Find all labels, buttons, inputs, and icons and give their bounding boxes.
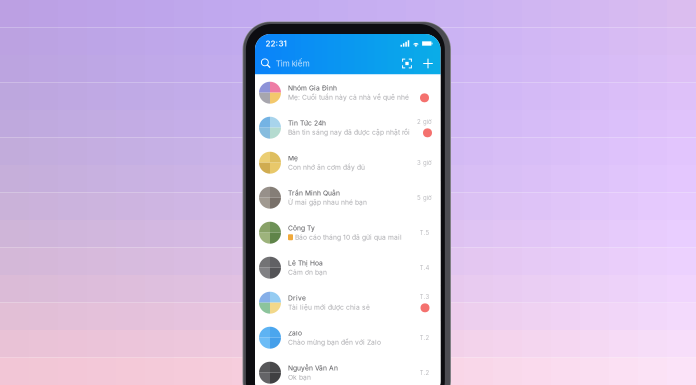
- button[interactable]: Quét mã QR: [398, 53, 416, 74]
- staticText: 2 giờ: [417, 118, 432, 125]
- button[interactable]: Tin Tức 24h: [255, 110, 440, 145]
- staticText: 3 giờ: [417, 159, 432, 166]
- staticText: Chào mừng bạn đến với Zalo: [288, 338, 381, 346]
- button[interactable]: Mẹ: [255, 145, 440, 180]
- staticText: Ok bạn: [288, 373, 311, 381]
- staticText: T.3: [419, 293, 429, 300]
- staticText: Cảm ơn bạn: [288, 268, 327, 276]
- staticText: 5 giờ: [417, 194, 432, 201]
- staticText: T.4: [419, 264, 429, 271]
- staticText: Lê Thị Hoa: [288, 259, 323, 267]
- button[interactable]: Zalo: [255, 320, 440, 355]
- staticText: Mẹ: [288, 154, 298, 162]
- staticText: T.5: [419, 229, 429, 236]
- staticText: Báo cáo tháng 10 đã gửi qua mail: [295, 233, 402, 241]
- staticText: Tài liệu mới được chia sẻ: [288, 303, 370, 311]
- staticText: Drive: [288, 294, 306, 302]
- staticText: T.2: [419, 369, 429, 376]
- staticText: Ừ mai gặp nhau nhé bạn: [288, 198, 367, 206]
- staticText: Nhóm Gia Đình: [288, 84, 337, 92]
- staticText: Bản tin sáng nay đã được cập nhật rồi: [288, 128, 410, 136]
- staticText: Trần Minh Quân: [288, 189, 340, 197]
- staticText: Nguyễn Văn An: [288, 364, 338, 372]
- button[interactable]: Công Ty: [255, 215, 440, 250]
- staticText: 22:31: [265, 39, 286, 48]
- button[interactable]: Tìm kiếm: [261, 53, 393, 74]
- staticText: Tin Tức 24h: [288, 119, 326, 127]
- button[interactable]: Thêm: [419, 53, 437, 74]
- button[interactable]: Drive: [255, 285, 440, 320]
- button[interactable]: Trần Minh Quân: [255, 180, 440, 215]
- staticText: Con nhớ ăn cơm đầy đủ: [288, 163, 365, 171]
- button[interactable]: Nhóm Gia Đình: [255, 75, 440, 110]
- staticText: Tìm kiếm: [276, 59, 310, 68]
- staticText: Mẹ: Cuối tuần này cả nhà về quê nhé: [288, 93, 409, 101]
- staticText: T.2: [419, 334, 429, 341]
- staticText: Zalo: [288, 329, 302, 337]
- button[interactable]: Nguyễn Văn An: [255, 355, 440, 385]
- button[interactable]: Lê Thị Hoa: [255, 250, 440, 285]
- staticText: Công Ty: [288, 224, 315, 232]
